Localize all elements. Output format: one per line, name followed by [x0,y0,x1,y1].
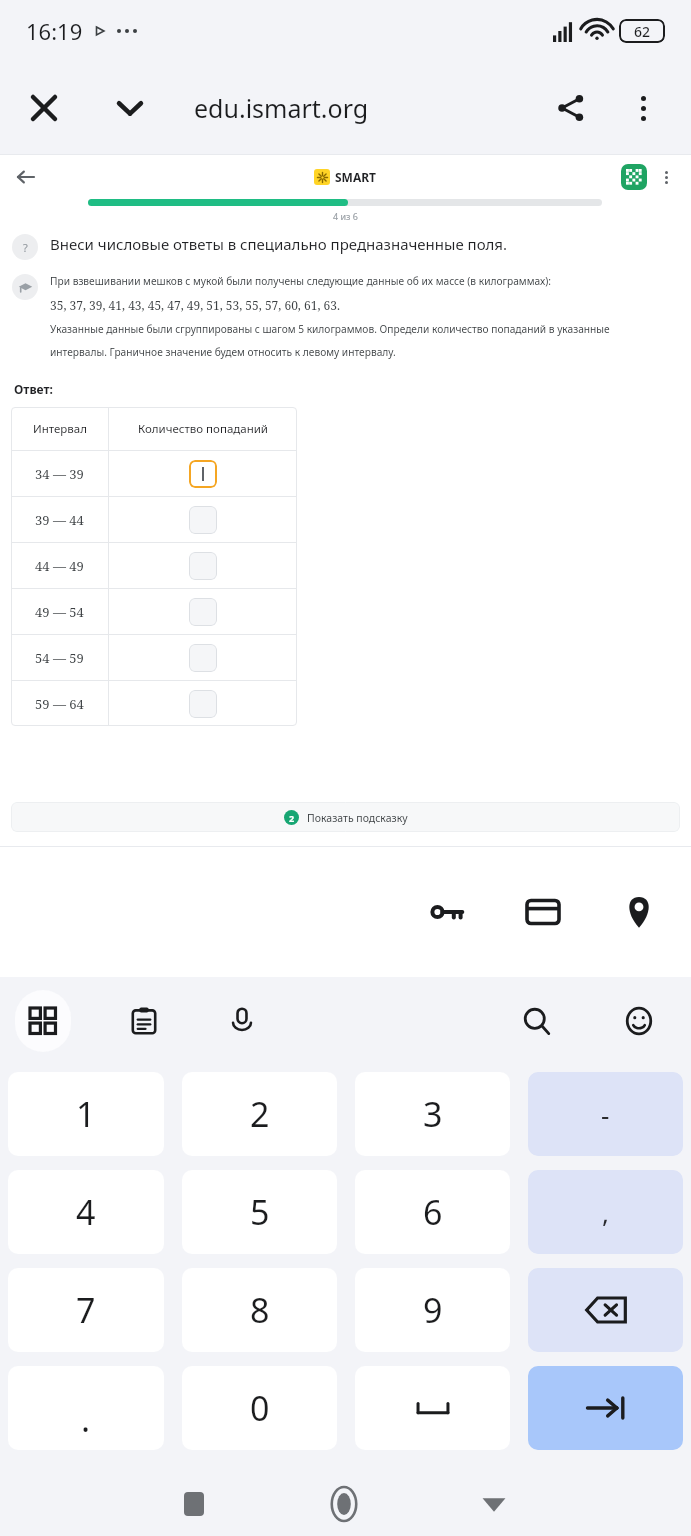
button[interactable]: Recents [172,1482,216,1526]
staticText: 49 — 54 [35,603,84,621]
button[interactable]: 2 [11,802,680,832]
staticText: Интервал [33,421,87,437]
button[interactable]: Answer field 3 [189,552,217,580]
button[interactable]: Passwords [425,890,469,934]
button[interactable]: Hide keyboard [472,1482,516,1526]
button[interactable]: 3 [355,1072,510,1156]
button[interactable]: Home [322,1482,366,1526]
button[interactable]: Payment methods [521,890,565,934]
button[interactable]: Page menu [653,164,679,190]
staticText: 39 — 44 [35,511,84,529]
button[interactable]: Close [20,84,68,132]
button[interactable]: Answer field 2 [189,506,217,534]
staticText: 7 [76,1287,96,1333]
button[interactable]: Share [547,84,595,132]
staticText: 2 [289,812,295,824]
staticText: Указанные данные были сгруппированы с ша… [50,322,610,336]
staticText: 5 [250,1189,270,1235]
button[interactable]: Scan QR code [621,164,647,190]
staticText: 0 [250,1385,270,1431]
staticText: edu.ismart.org [194,91,369,125]
staticText: SMART [335,169,377,185]
button[interactable]: Back [10,161,42,193]
button[interactable]: Collapse [106,84,154,132]
button[interactable]: Answer field 5 [189,644,217,672]
button[interactable]: 4 [8,1170,164,1254]
staticText: ? [23,240,28,255]
staticText: 35, 37, 39, 41, 43, 45, 47, 49, 51, 53, … [50,297,340,313]
button[interactable]: . [8,1366,164,1450]
button[interactable]: Emoji [613,995,665,1047]
staticText: . [81,1396,91,1442]
button[interactable]: More options [619,84,667,132]
button[interactable]: 2 [182,1072,337,1156]
button[interactable]: 9 [355,1268,510,1352]
staticText: 3 [423,1091,443,1137]
staticText: 6 [423,1189,443,1235]
button[interactable]: Answer field 4 [189,598,217,626]
button[interactable]: Answer field 6 [189,690,217,718]
staticText: , [602,1195,609,1230]
staticText: 2 [250,1091,270,1137]
staticText: 59 — 64 [35,695,84,713]
staticText: 9 [423,1287,443,1333]
button[interactable]: 8 [182,1268,337,1352]
staticText: Ответ: [14,381,53,397]
button[interactable]: Toolbar [15,990,71,1052]
staticText: 4 из 6 [333,210,358,222]
staticText: - [601,1097,610,1132]
staticText: Количество попаданий [138,421,268,437]
staticText: Показать подсказку [307,811,408,825]
staticText: 62 [634,22,651,41]
button[interactable]: 6 [355,1170,510,1254]
button[interactable]: Clipboard [118,995,170,1047]
staticText: 8 [250,1287,270,1333]
button[interactable]: Search [511,995,563,1047]
button[interactable]: , [528,1170,683,1254]
staticText: 4 [76,1189,96,1235]
button[interactable]: 5 [182,1170,337,1254]
staticText: 34 — 39 [35,465,84,483]
staticText: 54 — 59 [35,649,84,667]
button[interactable]: 7 [8,1268,164,1352]
button[interactable]: Enter [528,1366,683,1450]
button[interactable]: Voice input [216,995,268,1047]
staticText: интервалы. Граничное значение будем отно… [50,345,396,359]
button[interactable]: Backspace [528,1268,683,1352]
button[interactable]: 1 [8,1072,164,1156]
button[interactable]: Answer field 1 [189,460,217,488]
staticText: Внеси числовые ответы в специально предн… [50,234,508,254]
button[interactable]: Space [355,1366,510,1450]
staticText: 1 [76,1091,96,1137]
staticText: 44 — 49 [35,557,84,575]
button[interactable]: - [528,1072,683,1156]
button[interactable]: 0 [182,1366,337,1450]
staticText: При взвешивании мешков с мукой были полу… [50,274,551,288]
button[interactable]: Addresses [617,890,661,934]
staticText: 16:19 [26,16,83,46]
